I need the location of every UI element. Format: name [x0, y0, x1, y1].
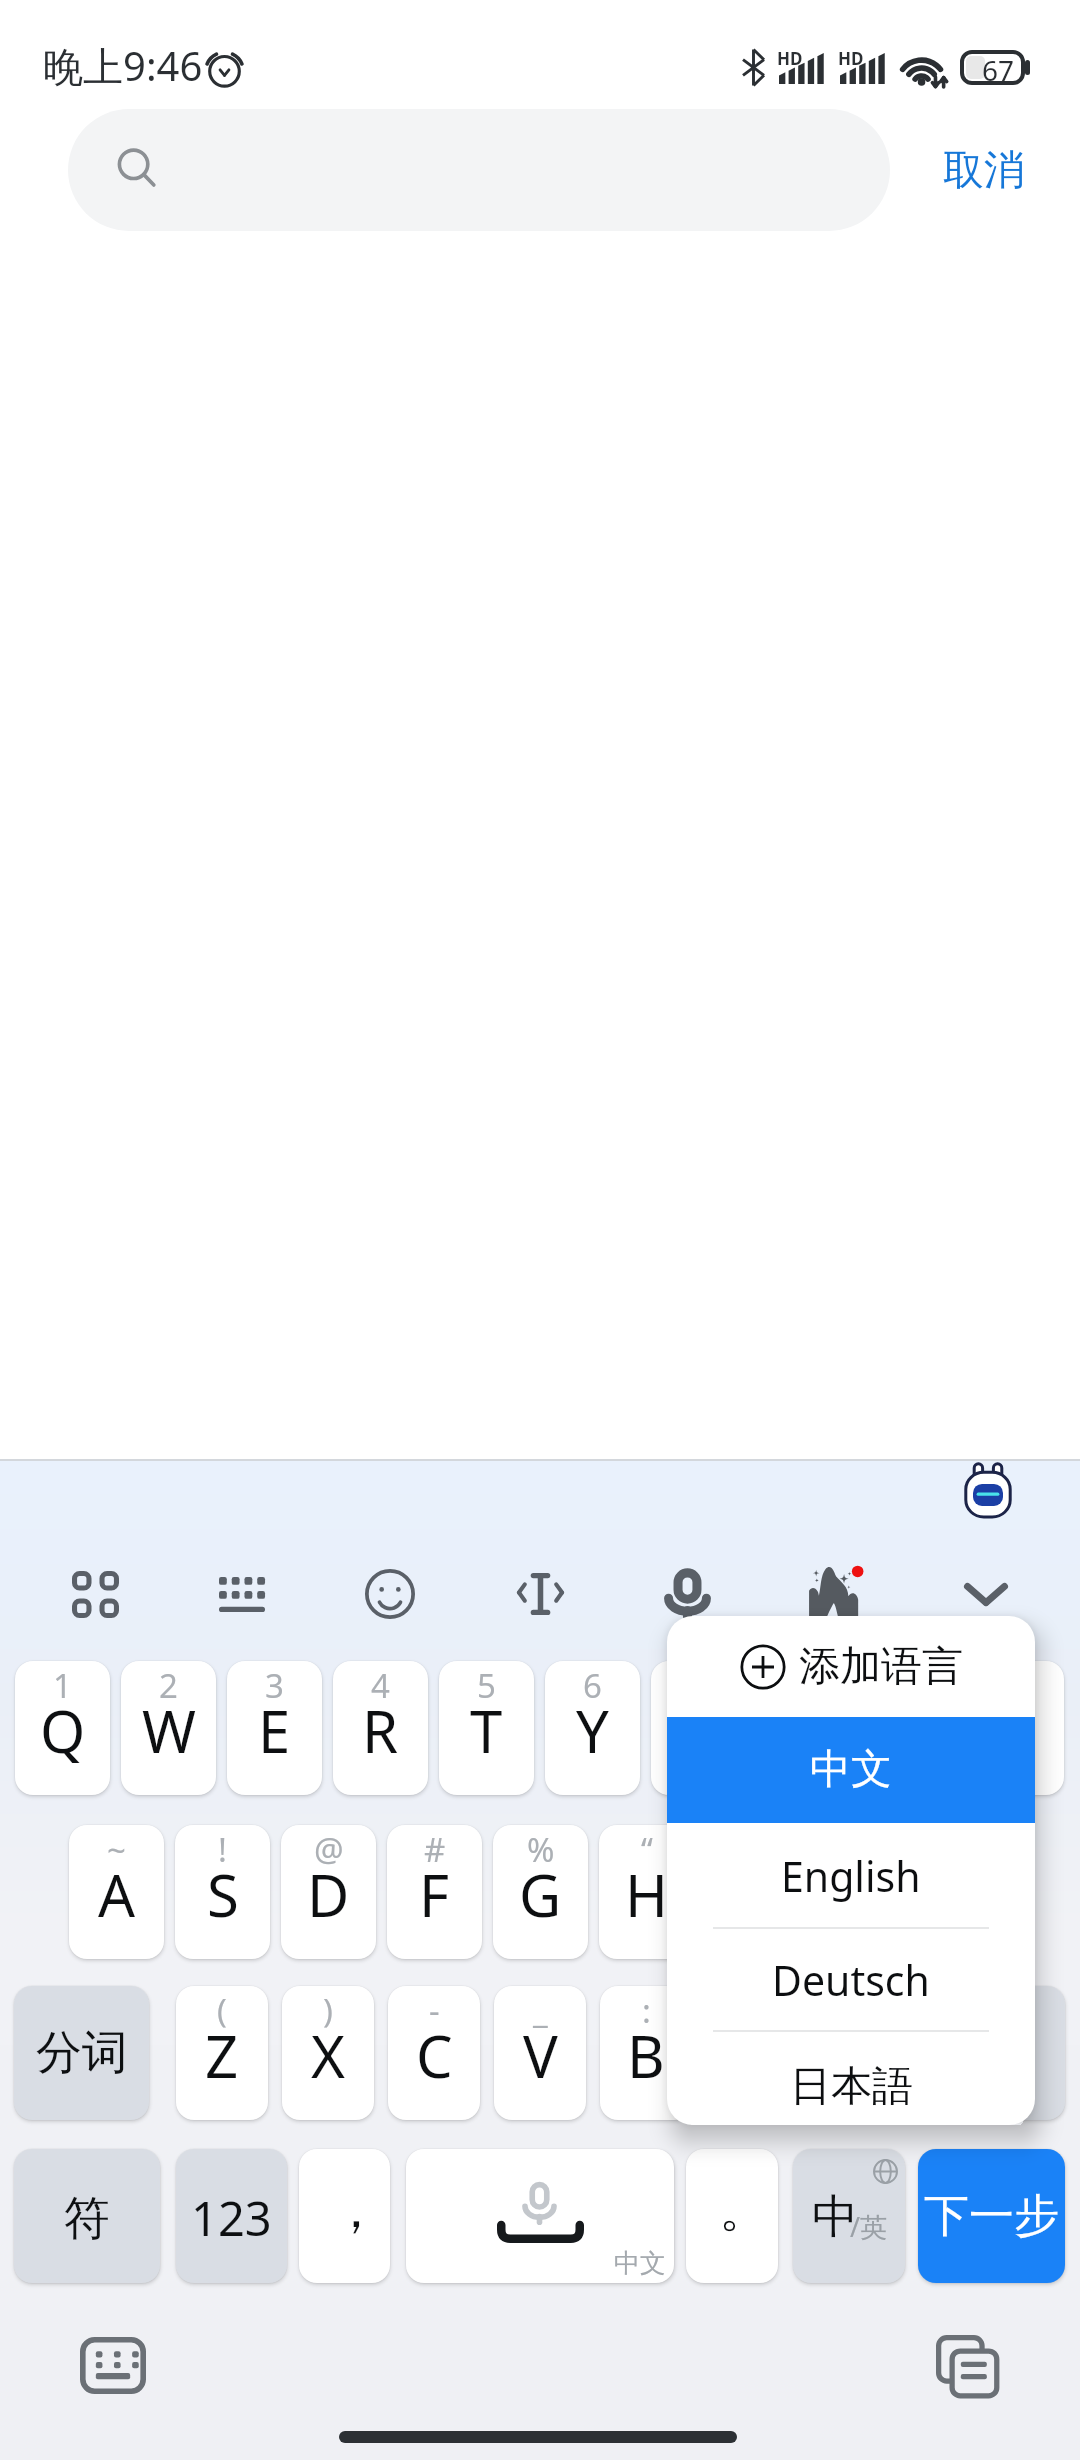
button[interactable]: 取消 [928, 120, 1038, 220]
button[interactable]: ( [176, 1986, 268, 2120]
staticText: 1 [53, 1663, 72, 1708]
button[interactable]: & [811, 1825, 906, 1959]
button[interactable]: “ [599, 1825, 694, 1959]
button[interactable]: Backspace [930, 1986, 1065, 2120]
button[interactable]: Stickers [775, 1544, 895, 1644]
staticText: E [258, 1691, 291, 1770]
staticText: K [841, 1855, 877, 1934]
staticText: P [999, 1691, 1035, 1770]
staticText: 中文 [614, 2247, 666, 2280]
button[interactable]: 4 [333, 1661, 428, 1795]
staticText: G [519, 1855, 562, 1934]
staticText: _ [533, 1988, 548, 2033]
button[interactable]: 8 [757, 1661, 852, 1795]
button[interactable]: 9 [863, 1661, 958, 1795]
button[interactable]: Assistant [958, 1462, 1018, 1523]
staticText: L [949, 1855, 980, 1934]
button[interactable]: _ [494, 1986, 586, 2120]
staticText: M [832, 2016, 885, 2095]
button[interactable]: 5 [439, 1661, 534, 1795]
staticText: N [730, 2016, 775, 2095]
staticText: ; [748, 1988, 757, 2033]
staticText: HD [838, 47, 864, 70]
button[interactable]: Clipboard [920, 2319, 1014, 2413]
staticText: H [625, 1855, 668, 1934]
button[interactable]: 7 [651, 1661, 746, 1795]
staticText: “ [641, 1827, 653, 1872]
button[interactable]: Hide keyboard [926, 1544, 1046, 1644]
staticText: Q [40, 1691, 86, 1770]
button[interactable]: English [667, 1823, 1035, 1928]
staticText: W [142, 1691, 196, 1770]
button[interactable]: Keyboard layout [182, 1544, 302, 1644]
button[interactable]: 中文 [667, 1717, 1035, 1823]
button[interactable]: 3 [227, 1661, 322, 1795]
staticText: % [527, 1827, 555, 1872]
button[interactable]: 123 [176, 2149, 287, 2283]
button[interactable]: 0 [969, 1661, 1064, 1795]
staticText: D [307, 1855, 350, 1934]
button[interactable]: : [600, 1986, 692, 2120]
staticText: & [846, 1827, 871, 1872]
button[interactable]: 2 [121, 1661, 216, 1795]
button[interactable]: Space [406, 2149, 674, 2283]
button[interactable]: 分词 [14, 1986, 149, 2120]
button[interactable]: Switch keyboard [66, 2323, 160, 2407]
button[interactable]: Switch Chinese English [793, 2149, 905, 2283]
button[interactable]: * [917, 1825, 1012, 1959]
staticText: J [745, 1855, 761, 1934]
button[interactable]: @ [281, 1825, 376, 1959]
staticText: ! [218, 1827, 227, 1872]
button[interactable]: Move cursor [480, 1544, 600, 1644]
button[interactable]: 。 [686, 2149, 778, 2283]
button[interactable]: ， [299, 2149, 390, 2283]
button[interactable]: ” [705, 1825, 800, 1959]
staticText: 符 [64, 2190, 110, 2248]
staticText: 分词 [36, 2024, 128, 2082]
button[interactable]: 添加语言 [667, 1616, 1035, 1717]
staticText: ， [331, 2179, 381, 2242]
staticText: A [98, 1855, 136, 1934]
button[interactable]: 6 [545, 1661, 640, 1795]
button[interactable]: ; [706, 1986, 798, 2120]
staticText: 添加语言 [799, 1641, 963, 1693]
button[interactable]: % [493, 1825, 588, 1959]
button[interactable]: Voice input [627, 1544, 747, 1644]
staticText: @ [314, 1827, 344, 1872]
staticText: Z [205, 2016, 239, 2095]
staticText: ( [217, 1988, 227, 2033]
staticText: 晚上9:46 [43, 38, 203, 93]
button[interactable]: 日本語 [667, 2032, 1035, 2125]
staticText: B [627, 2016, 665, 2095]
staticText: 5 [477, 1663, 496, 1708]
staticText: English [781, 1848, 921, 1904]
button[interactable]: ! [175, 1825, 270, 1959]
staticText: 4 [371, 1663, 390, 1708]
staticText: R [362, 1691, 399, 1770]
button[interactable]: / [812, 1986, 904, 2120]
button[interactable]: Panels [35, 1544, 155, 1644]
staticText: 取消 [943, 145, 1025, 197]
staticText: 123 [191, 2186, 272, 2250]
button[interactable]: 符 [14, 2149, 160, 2283]
staticText: 3 [265, 1663, 284, 1708]
button[interactable]: ~ [69, 1825, 164, 1959]
button[interactable]: 下一步 [918, 2149, 1065, 2283]
button[interactable]: 1 [15, 1661, 110, 1795]
staticText: 6 [583, 1663, 602, 1708]
button[interactable] [68, 109, 890, 231]
staticText: C [416, 2016, 453, 2095]
button[interactable]: # [387, 1825, 482, 1959]
button[interactable]: ) [282, 1986, 374, 2120]
staticText: T [470, 1691, 503, 1770]
button[interactable]: Emoji [330, 1544, 450, 1644]
staticText: 中文 [810, 1744, 892, 1796]
button[interactable]: - [388, 1986, 480, 2120]
button[interactable]: Deutsch [667, 1928, 1035, 2031]
staticText: - [429, 1988, 440, 2033]
staticText: # [424, 1827, 446, 1872]
staticText: O [888, 1691, 934, 1770]
staticText: ) [323, 1988, 333, 2033]
